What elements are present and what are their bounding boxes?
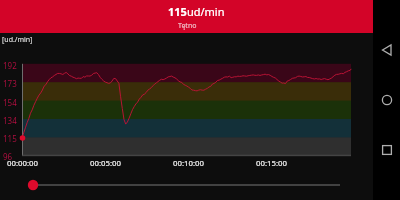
button[interactable]: 115ud/min (0, 0, 400, 33)
staticText: 00:15:00 (256, 158, 287, 169)
staticText: 00:10:00 (173, 158, 204, 169)
staticText: [ud./min] (2, 35, 33, 45)
button[interactable]: Home (373, 75, 400, 125)
staticText: 192 (3, 60, 17, 71)
staticText: 154 (3, 97, 17, 108)
staticText: 115ud/min (168, 4, 225, 19)
staticText: 96 (3, 151, 13, 162)
staticText: Tętno (178, 21, 197, 31)
staticText: 00:00:00 (7, 158, 38, 169)
staticText: 173 (3, 78, 17, 89)
button[interactable]: Recent apps (373, 125, 400, 175)
staticText: 115 (3, 133, 17, 144)
button[interactable]: Back (373, 25, 400, 75)
staticText: 00:05:00 (90, 158, 121, 169)
staticText: 134 (3, 115, 17, 126)
